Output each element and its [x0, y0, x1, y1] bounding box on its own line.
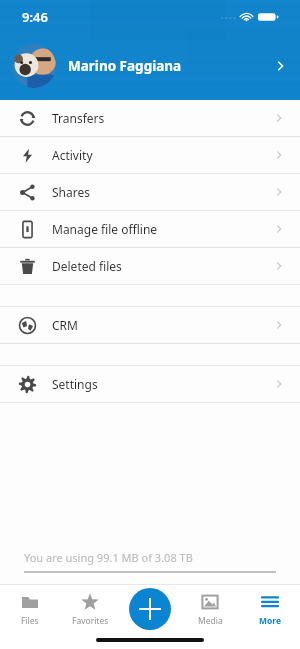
button[interactable]: Marino Faggiana [0, 36, 300, 96]
staticText: Media [198, 615, 223, 627]
staticText: Transfers [52, 110, 105, 126]
staticText: Favorites [72, 615, 109, 627]
button[interactable]: More [240, 584, 300, 649]
button[interactable]: Files [0, 584, 60, 649]
staticText: Deleted files [52, 258, 122, 274]
staticText: Manage file offline [52, 221, 158, 237]
staticText: Files [21, 615, 39, 627]
staticText: More [259, 615, 282, 627]
button[interactable]: Deleted files [0, 248, 300, 284]
staticText: CRM [52, 317, 78, 333]
staticText: 9:46 [22, 8, 48, 26]
staticText: Activity [52, 147, 93, 163]
button[interactable]: Settings [0, 366, 300, 402]
button[interactable]: Favorites [60, 584, 120, 649]
staticText: Settings [52, 376, 98, 392]
staticText: Shares [52, 184, 90, 200]
staticText: You are using 99.1 MB of 3.08 TB [24, 550, 193, 565]
button[interactable]: Transfers [0, 100, 300, 136]
button[interactable]: Media [180, 584, 240, 649]
button[interactable]: Add [129, 588, 171, 630]
button[interactable]: Activity [0, 137, 300, 173]
button[interactable]: Shares [0, 174, 300, 210]
button[interactable]: CRM [0, 307, 300, 343]
staticText: Marino Faggiana [68, 57, 182, 75]
button[interactable]: Manage file offline [0, 211, 300, 247]
